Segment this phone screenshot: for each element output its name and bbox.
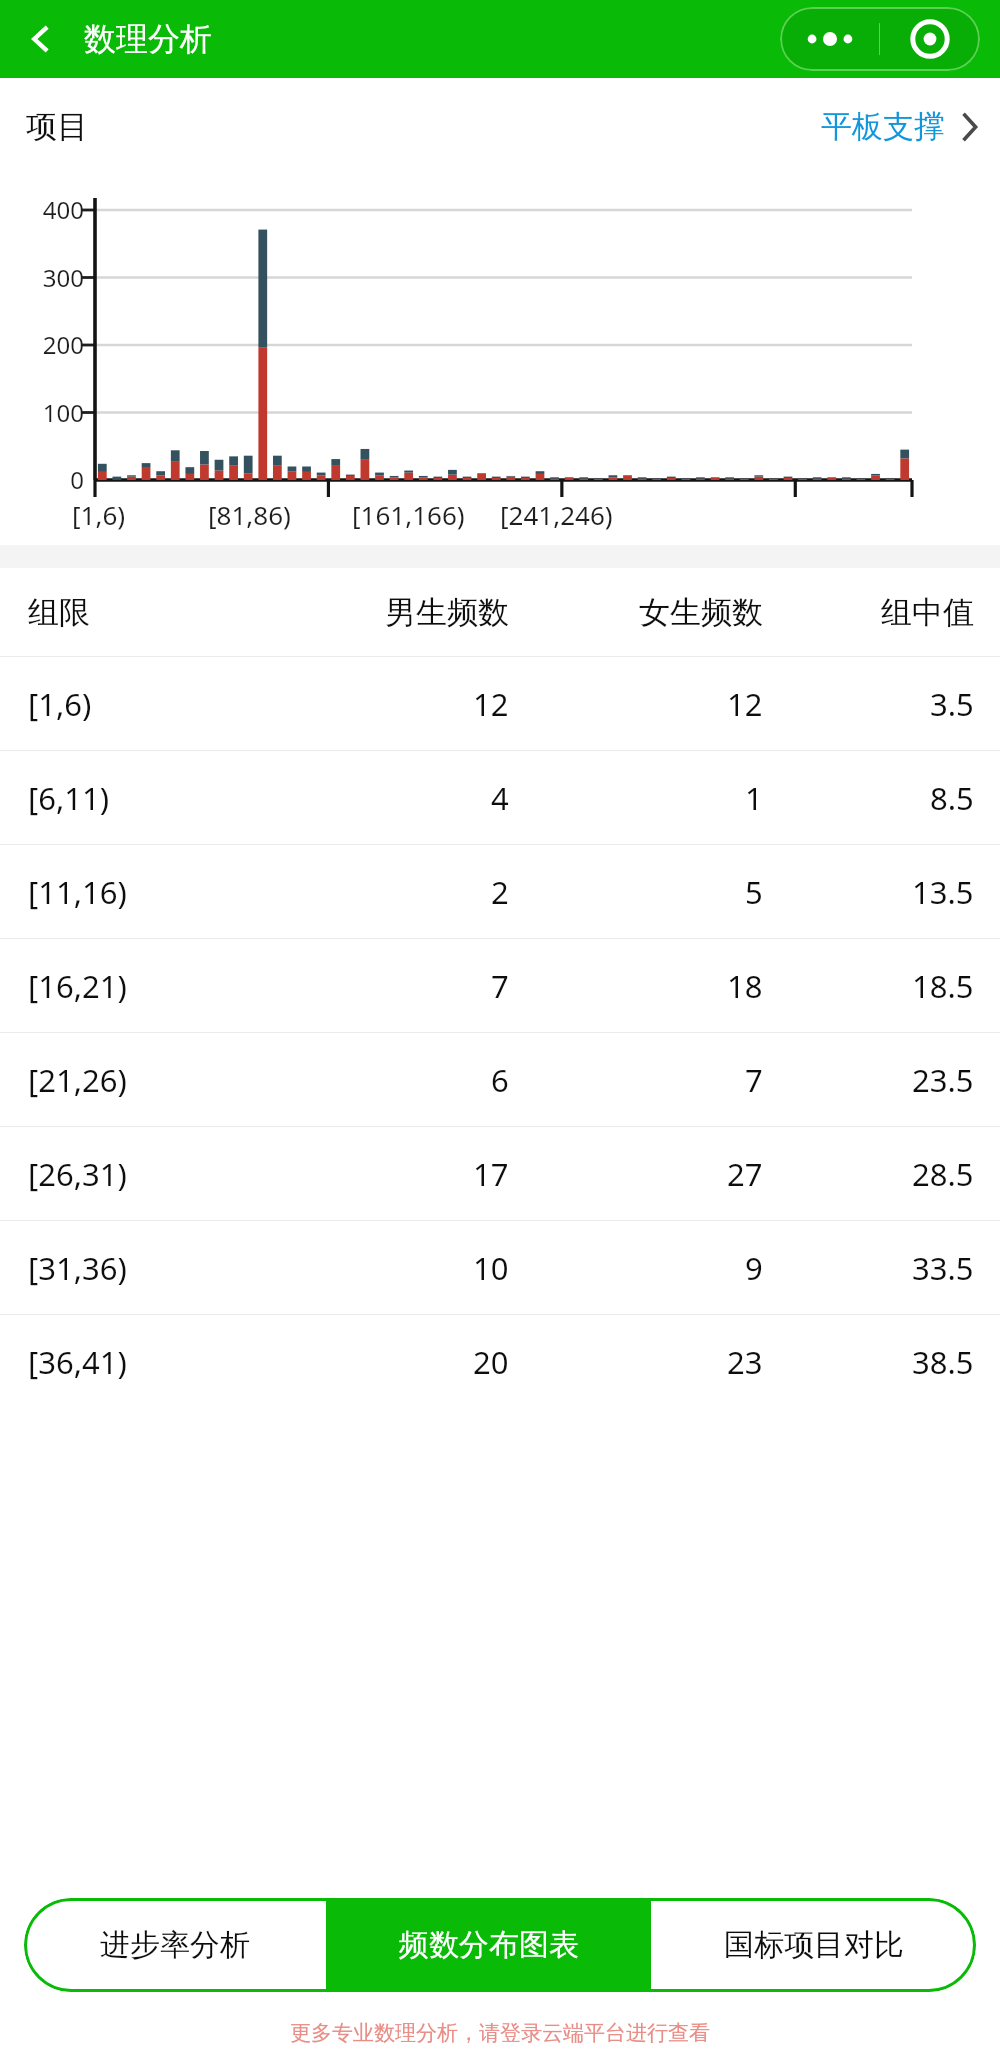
staticText: 7 xyxy=(491,965,509,1007)
staticText: 33.5 xyxy=(912,1247,974,1289)
staticText: [31,36) xyxy=(28,1247,127,1289)
staticText: 23 xyxy=(727,1341,763,1383)
staticText: 国标项目对比 xyxy=(724,1926,904,1964)
staticText: [6,11) xyxy=(28,777,110,819)
staticText: 12 xyxy=(473,683,509,725)
button[interactable]: [6,11) xyxy=(0,751,1000,844)
staticText: 38.5 xyxy=(912,1341,974,1383)
staticText: [11,16) xyxy=(28,871,127,913)
staticText: 更多专业数理分析，请登录云端平台进行查看 xyxy=(0,2020,1000,2046)
button[interactable]: Close mini program xyxy=(880,7,980,71)
staticText: 20 xyxy=(473,1341,509,1383)
staticText: [1,6) xyxy=(28,683,92,725)
button[interactable]: [26,31) xyxy=(0,1127,1000,1220)
staticText: 200 xyxy=(12,328,84,361)
staticText: 7 xyxy=(745,1059,763,1101)
staticText: 组限 xyxy=(28,593,90,632)
staticText: 10 xyxy=(473,1247,509,1289)
staticText: 6 xyxy=(491,1059,509,1101)
staticText: 18.5 xyxy=(912,965,974,1007)
staticText: 1 xyxy=(745,777,763,819)
staticText: [161,166) xyxy=(352,497,465,532)
staticText: 8.5 xyxy=(930,777,974,819)
staticText: 组中值 xyxy=(881,593,974,632)
staticText: 13.5 xyxy=(912,871,974,913)
staticText: [1,6) xyxy=(72,497,126,532)
staticText: 数理分析 xyxy=(84,19,212,59)
staticText: 2 xyxy=(491,871,509,913)
staticText: [241,246) xyxy=(500,497,613,532)
staticText: 3.5 xyxy=(930,683,974,725)
staticText: 进步率分析 xyxy=(100,1926,250,1964)
button[interactable]: [21,26) xyxy=(0,1033,1000,1126)
button[interactable]: 频数分布图表 xyxy=(326,1898,651,1992)
staticText: 23.5 xyxy=(912,1059,974,1101)
staticText: 平板支撑 xyxy=(821,107,945,146)
staticText: 9 xyxy=(745,1247,763,1289)
button[interactable]: [31,36) xyxy=(0,1221,1000,1314)
staticText: [36,41) xyxy=(28,1341,127,1383)
staticText: 17 xyxy=(473,1153,509,1195)
staticText: 400 xyxy=(12,193,84,226)
staticText: 300 xyxy=(12,261,84,294)
staticText: 18 xyxy=(727,965,763,1007)
staticText: 12 xyxy=(727,683,763,725)
button[interactable]: More options xyxy=(780,7,879,71)
staticText: 4 xyxy=(491,777,509,819)
button[interactable]: Back xyxy=(14,12,68,66)
button[interactable]: [16,21) xyxy=(0,939,1000,1032)
staticText: [21,26) xyxy=(28,1059,127,1101)
staticText: [16,21) xyxy=(28,965,127,1007)
staticText: 男生频数 xyxy=(385,593,509,632)
staticText: 100 xyxy=(12,396,84,429)
button[interactable]: [1,6) xyxy=(0,657,1000,750)
button[interactable]: 国标项目对比 xyxy=(651,1898,976,1992)
button[interactable]: 进步率分析 xyxy=(24,1898,326,1992)
staticText: [26,31) xyxy=(28,1153,127,1195)
button[interactable]: 项目 xyxy=(0,78,1000,175)
button[interactable]: [11,16) xyxy=(0,845,1000,938)
staticText: 27 xyxy=(727,1153,763,1195)
staticText: 频数分布图表 xyxy=(399,1926,579,1964)
staticText: 0 xyxy=(12,463,84,496)
staticText: 女生频数 xyxy=(639,593,763,632)
staticText: [81,86) xyxy=(208,497,291,532)
staticText: 5 xyxy=(745,871,763,913)
staticText: 项目 xyxy=(26,107,88,146)
button[interactable]: [36,41) xyxy=(0,1315,1000,1408)
staticText: 28.5 xyxy=(912,1153,974,1195)
